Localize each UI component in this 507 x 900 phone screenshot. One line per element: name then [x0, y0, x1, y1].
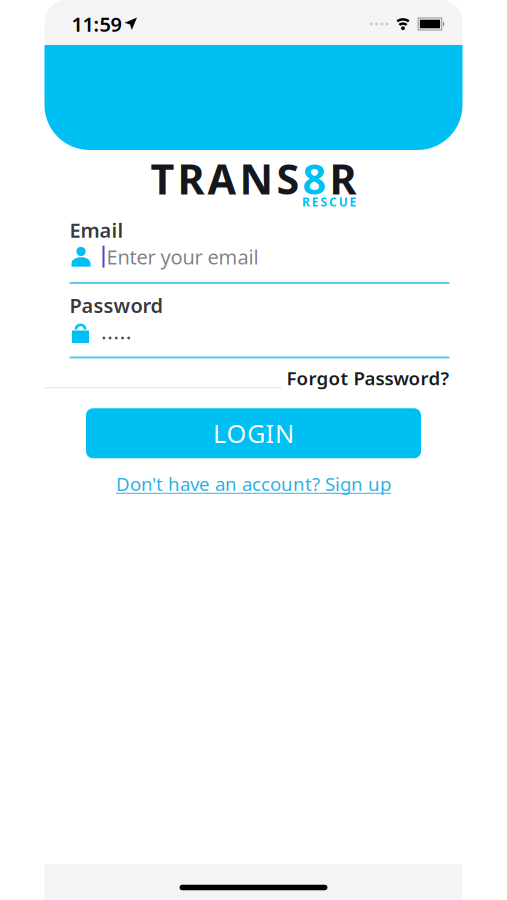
staticText: 11:59 — [71, 11, 121, 37]
staticText: Enter your email — [106, 243, 258, 270]
staticText: A — [207, 151, 236, 206]
staticText: R — [177, 151, 204, 206]
staticText: C — [329, 194, 337, 210]
staticText: Password — [69, 292, 163, 318]
staticText: E — [312, 194, 319, 210]
staticText: LOGIN — [213, 416, 294, 450]
staticText: T — [150, 151, 174, 206]
staticText: R — [329, 151, 356, 206]
button[interactable]: Email, Enter your email — [44, 243, 462, 270]
staticText: Don't have an account? Sign up — [116, 471, 391, 496]
staticText: E — [349, 194, 356, 210]
staticText: Email — [69, 217, 123, 243]
staticText: 8 — [302, 151, 326, 206]
button[interactable]: Password — [44, 322, 462, 343]
staticText: Forgot Password? — [286, 365, 449, 390]
button[interactable]: LOGIN — [86, 408, 421, 458]
staticText: U — [339, 194, 348, 210]
staticText: R — [302, 194, 310, 210]
staticText: N — [239, 151, 273, 206]
staticText: S — [320, 194, 327, 210]
button[interactable]: Forgot Password? — [286, 365, 449, 390]
button[interactable]: Don't have an account? Sign up — [116, 471, 391, 496]
staticText: S — [276, 151, 299, 206]
